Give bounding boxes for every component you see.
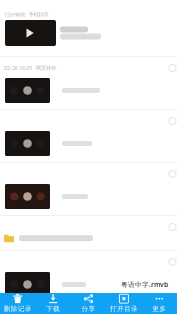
button[interactable] bbox=[0, 162, 177, 215]
staticText: 粤语中字.rmvb bbox=[121, 280, 168, 289]
staticText: 分享 bbox=[81, 305, 95, 313]
staticText: 下载 bbox=[46, 305, 60, 313]
staticText: 15分钟前 bbox=[4, 11, 25, 18]
button[interactable]: 粤语中字.rmvb bbox=[0, 250, 177, 303]
button[interactable]: 分享 bbox=[71, 293, 106, 314]
staticText: 删除记录 bbox=[4, 305, 32, 313]
staticText: 打开目录 bbox=[110, 305, 138, 313]
staticText: 手机转存 bbox=[28, 11, 48, 18]
button[interactable] bbox=[0, 109, 177, 162]
button[interactable]: 02-26 16:25 bbox=[0, 56, 177, 109]
staticText: 02-26 16:25 bbox=[4, 64, 32, 72]
button[interactable]: 打开目录 bbox=[106, 293, 142, 314]
button[interactable] bbox=[0, 215, 177, 250]
button[interactable]: 删除记录 bbox=[0, 293, 35, 314]
staticText: 更多 bbox=[152, 305, 166, 313]
button[interactable]: 更多 bbox=[142, 293, 177, 314]
button[interactable]: 下载 bbox=[35, 293, 71, 314]
staticText: 网页转存 bbox=[36, 65, 56, 71]
